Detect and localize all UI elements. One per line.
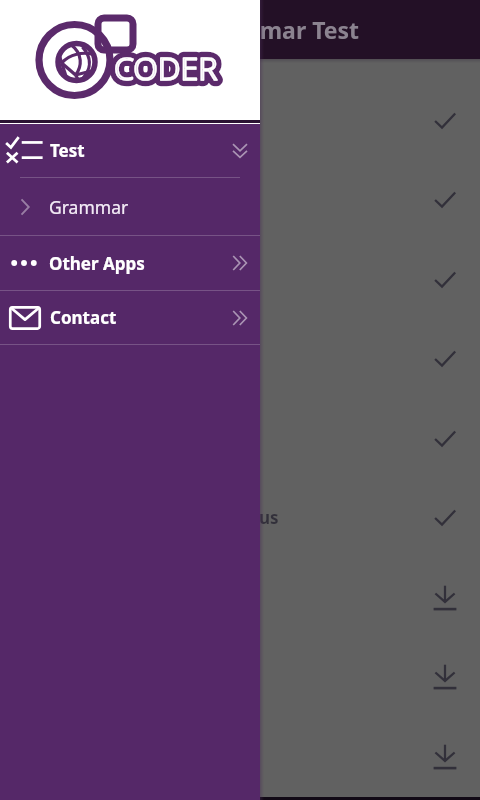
staticText: 2 - Present Continuous — [22, 188, 213, 211]
button[interactable]: 8 - Future Simple — [0, 637, 480, 716]
staticText: Other Apps — [49, 252, 145, 275]
staticText: Contact — [50, 306, 117, 329]
button[interactable]: Other Apps — [0, 236, 260, 290]
button[interactable]: 7 - Past Perfect — [0, 558, 480, 637]
button[interactable]: 1 - Present Simple — [0, 81, 480, 160]
button[interactable]: Contact — [0, 291, 260, 344]
button[interactable]: 3 - Past Simple — [0, 240, 480, 319]
staticText: Grammar — [49, 195, 129, 219]
staticText: 3 - Past Simple — [22, 268, 145, 291]
button[interactable]: Grammar — [0, 178, 260, 235]
button[interactable]: Test — [0, 124, 260, 177]
staticText: Test — [50, 139, 85, 162]
button[interactable]: 2 - Present Continuous — [0, 160, 480, 239]
staticText: 1 - Present Simple — [22, 109, 173, 132]
staticText: 6 - Present Perfect Continuous — [22, 506, 279, 529]
staticText: Grammar Test — [197, 14, 360, 45]
button[interactable]: 4 - Past Continuous — [0, 319, 480, 398]
button[interactable]: 5 - Present Perfect — [0, 399, 480, 478]
button[interactable]: 9 - Future Continuous — [0, 717, 480, 796]
button[interactable]: 6 - Present Perfect Continuous — [0, 478, 480, 557]
staticText: CODER — [114, 46, 218, 90]
staticText: CODER — [114, 46, 218, 90]
